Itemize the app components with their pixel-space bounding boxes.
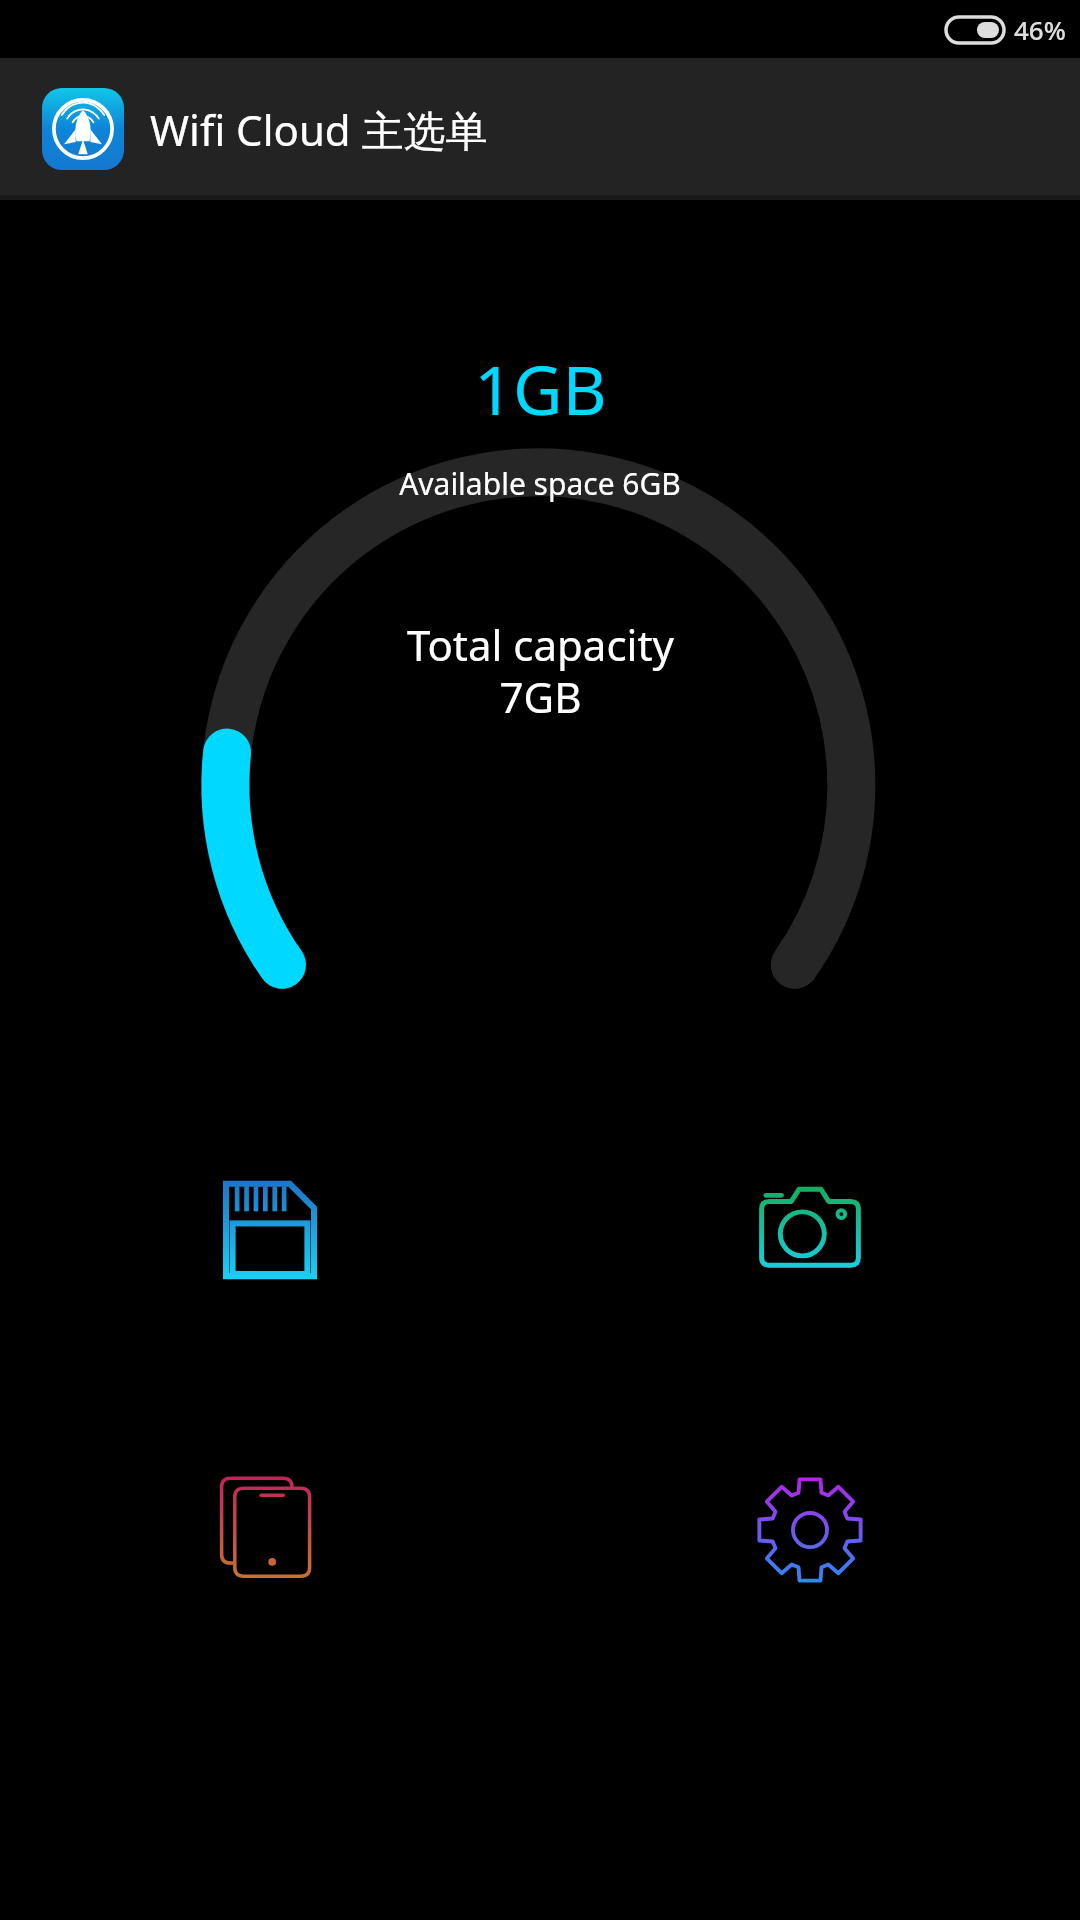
staticText: Total capacity 7GB: [407, 616, 674, 725]
staticText: Wifi Cloud 主选单: [150, 101, 488, 158]
staticText: Available space 6GB: [399, 463, 681, 504]
button[interactable]: SD card: [0, 1080, 540, 1380]
staticText: 46%: [1014, 12, 1066, 47]
button[interactable]: Wifi Cloud: [42, 88, 124, 170]
button[interactable]: Camera: [540, 1080, 1080, 1380]
staticText: 1GB: [474, 342, 607, 435]
button[interactable]: Settings: [540, 1380, 1080, 1680]
button[interactable]: Phone storage: [0, 1380, 540, 1680]
